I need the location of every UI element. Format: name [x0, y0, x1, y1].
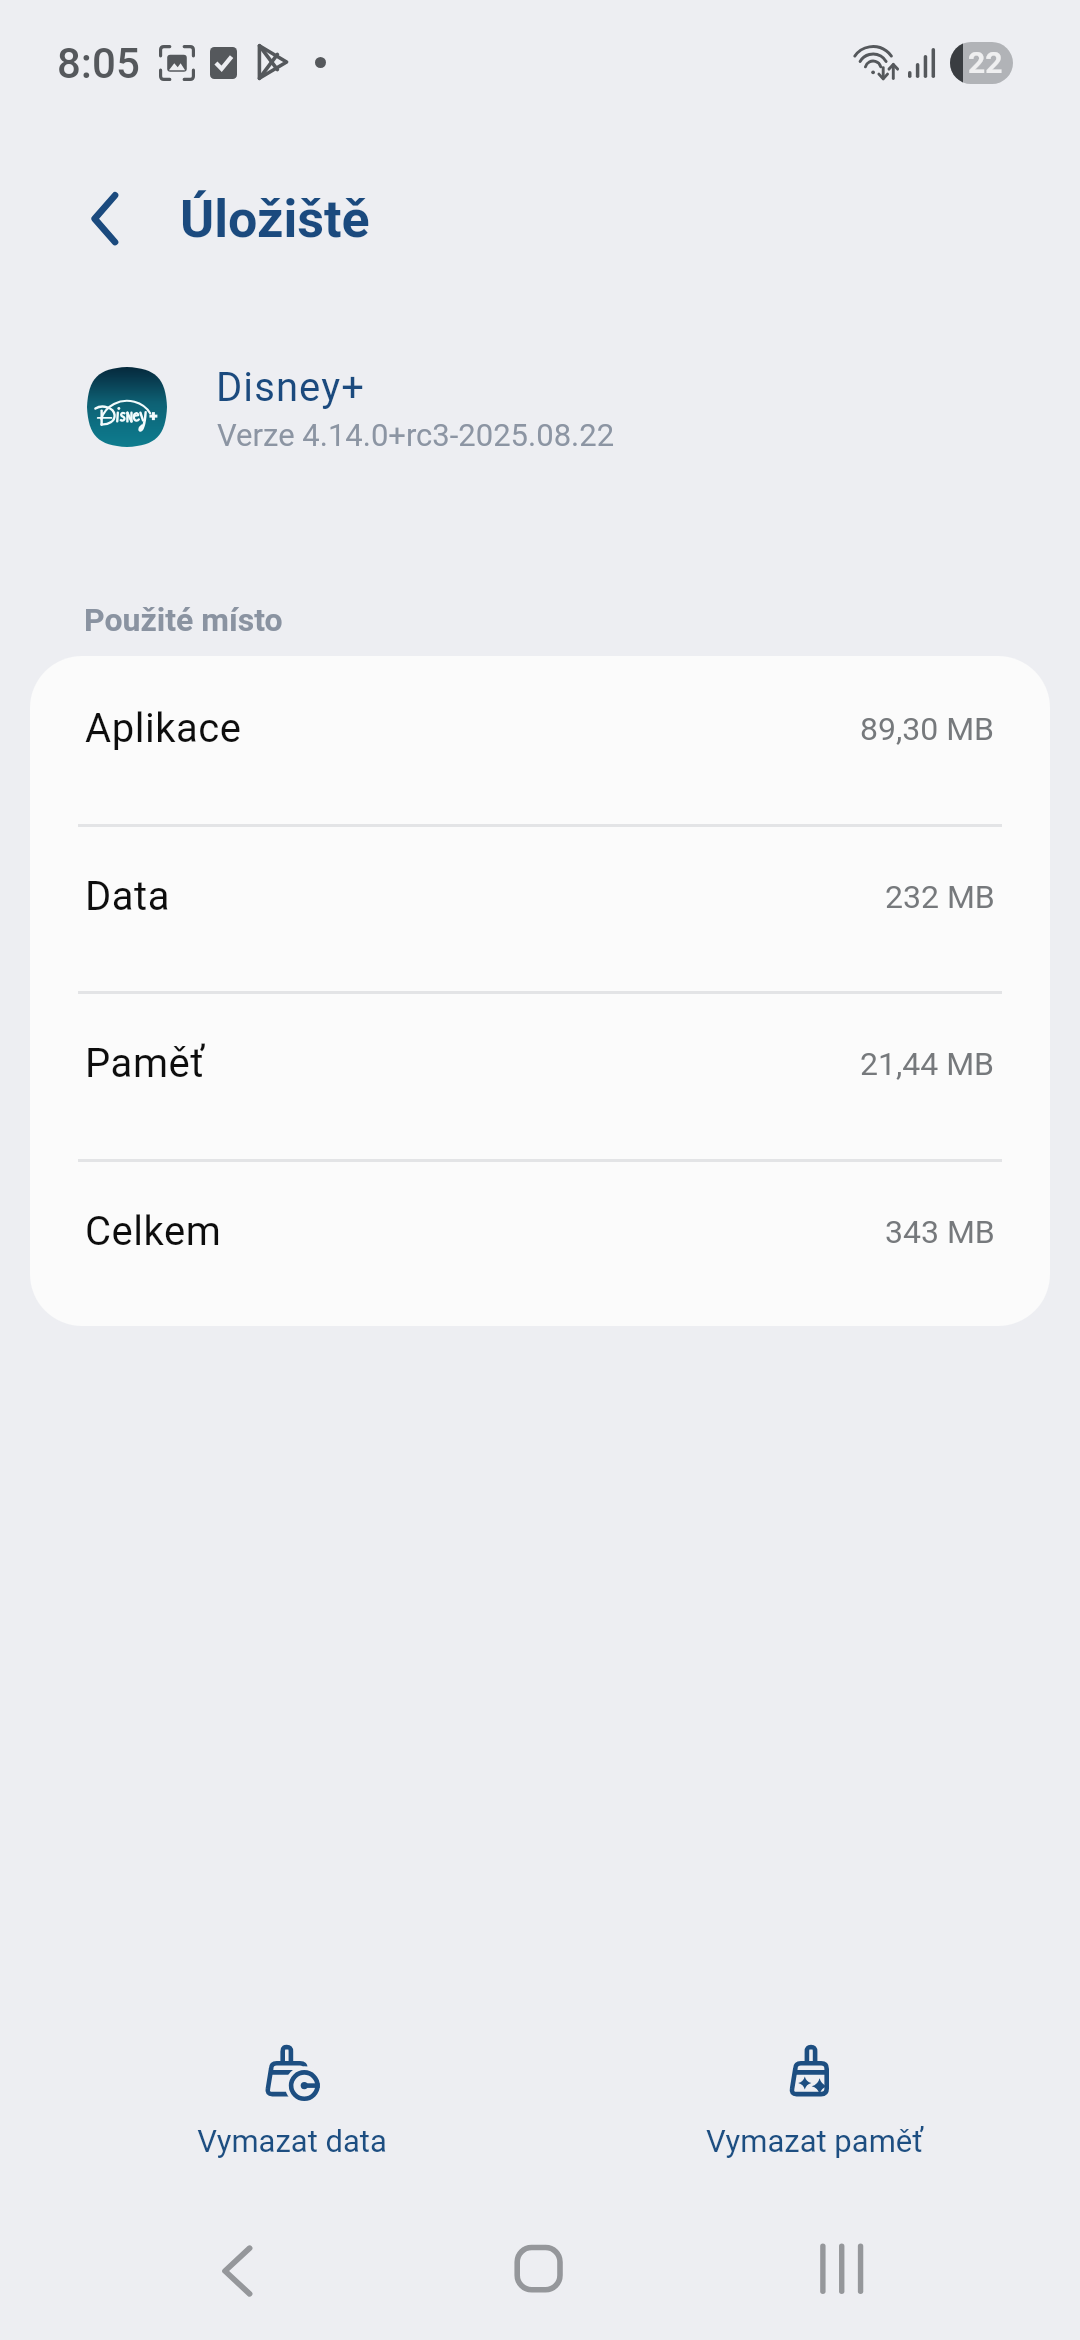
staticText: Celkem	[85, 1208, 222, 1255]
staticText: 343 MB	[885, 1213, 995, 1251]
staticText: 8:05	[57, 39, 140, 88]
staticText: Vymazat data	[197, 2123, 387, 2159]
button[interactable]: Back	[70, 179, 150, 259]
staticText: Úložiště	[180, 189, 370, 250]
button[interactable]: Celkem	[30, 1159, 1050, 1326]
staticText: Disney+	[216, 364, 365, 411]
button[interactable]: Vymazat paměť	[634, 2021, 994, 2159]
button[interactable]: Paměť	[30, 991, 1050, 1159]
staticText: 21,44 MB	[860, 1045, 995, 1083]
staticText: 22	[968, 45, 1003, 80]
staticText: 89,30 MB	[860, 710, 995, 748]
staticText: 232 MB	[885, 878, 995, 916]
staticText: Použité místo	[84, 601, 283, 639]
staticText: Paměť	[85, 1040, 205, 1087]
button[interactable]: Back	[207, 2241, 267, 2301]
staticText: Verze 4.14.0+rc3-2025.08.22	[217, 417, 615, 453]
staticText: Vymazat paměť	[706, 2123, 923, 2159]
staticText: Data	[85, 873, 171, 920]
staticText: Aplikace	[85, 705, 242, 752]
button[interactable]: Aplikace	[30, 656, 1050, 824]
button[interactable]: Recent apps	[811, 2239, 871, 2299]
button[interactable]: Data	[30, 824, 1050, 992]
button[interactable]: Home	[508, 2239, 568, 2299]
button[interactable]: Vymazat data	[112, 2021, 472, 2159]
